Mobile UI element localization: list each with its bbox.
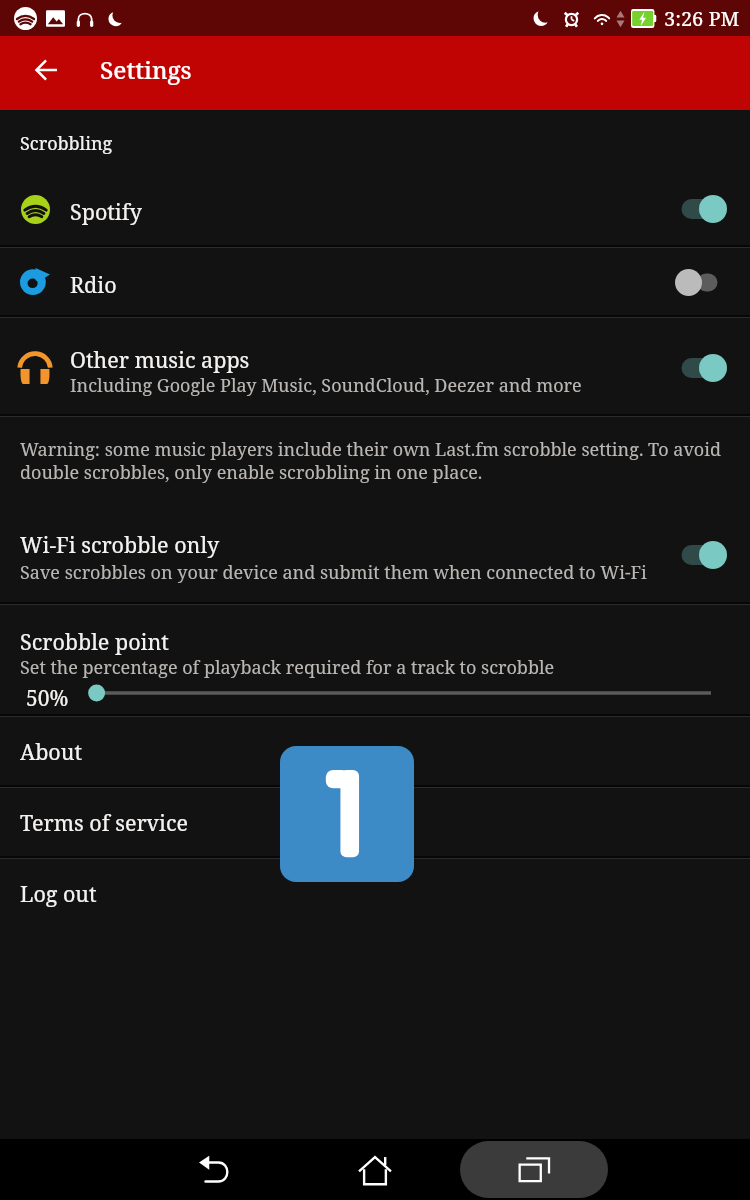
- button[interactable]: Back: [186, 1141, 244, 1199]
- staticText: Including Google Play Music, SoundCloud,…: [70, 373, 582, 398]
- button[interactable]: Other music apps: [0, 317, 750, 416]
- staticText: About: [20, 737, 82, 766]
- staticText: Rdio: [70, 270, 117, 299]
- staticText: 3:26 PM: [664, 5, 740, 32]
- button[interactable]: Warning: some music players include thei…: [0, 416, 750, 604]
- staticText: Terms of service: [20, 808, 189, 837]
- button[interactable]: Log out: [0, 858, 750, 929]
- button[interactable]: About: [0, 716, 750, 787]
- staticText: Wi-Fi scrobble only: [20, 530, 220, 559]
- staticText: Scrobbling: [20, 131, 113, 156]
- button[interactable]: Scrobble point: [0, 604, 750, 716]
- staticText: Set the percentage of playback required …: [20, 655, 555, 680]
- button[interactable]: Recent apps: [460, 1141, 608, 1198]
- staticText: 50%: [26, 684, 69, 713]
- button[interactable]: Back: [22, 46, 70, 94]
- staticText: Scrobble point: [20, 627, 169, 656]
- button[interactable]: On: [681, 541, 727, 569]
- staticText: Other music apps: [70, 345, 250, 374]
- staticText: Warning: some music players include thei…: [20, 437, 730, 485]
- button[interactable]: On: [681, 195, 727, 223]
- button[interactable]: Rdio: [0, 247, 750, 317]
- staticText: Log out: [20, 879, 97, 908]
- button[interactable]: On: [681, 354, 727, 382]
- staticText: Spotify: [70, 197, 142, 226]
- button[interactable]: Off: [675, 269, 718, 296]
- staticText: Save scrobbles on your device and submit…: [20, 560, 647, 585]
- button[interactable]: Spotify: [0, 170, 750, 247]
- staticText: Settings: [100, 53, 192, 86]
- button[interactable]: Terms of service: [0, 787, 750, 858]
- button[interactable]: Home: [346, 1141, 404, 1199]
